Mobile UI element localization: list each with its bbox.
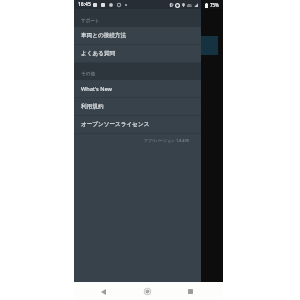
staticText: オープンソースライセンス: [81, 121, 150, 128]
button[interactable]: Home: [142, 286, 153, 297]
staticText: その他: [81, 71, 95, 77]
button[interactable]: 車両との接続方法: [74, 27, 201, 45]
staticText: 4G: [187, 3, 192, 8]
staticText: アプリバージョン 1.8.495: [144, 138, 189, 143]
staticText: 75%: [210, 2, 219, 8]
button[interactable]: よくある質問: [74, 45, 201, 63]
button[interactable]: 利用規約: [74, 98, 201, 116]
staticText: What's New: [81, 85, 112, 93]
staticText: 利用規約: [81, 103, 104, 110]
staticText: サポート: [81, 18, 100, 24]
staticText: 車両との接続方法: [81, 32, 127, 39]
button[interactable]: What's New: [74, 80, 201, 98]
button[interactable]: Back: [98, 286, 109, 297]
staticText: よくある質問: [81, 50, 116, 57]
button[interactable]: オープンソースライセンス: [74, 116, 201, 134]
staticText: 16:45: [78, 1, 91, 8]
button[interactable]: Recent apps: [185, 286, 196, 297]
